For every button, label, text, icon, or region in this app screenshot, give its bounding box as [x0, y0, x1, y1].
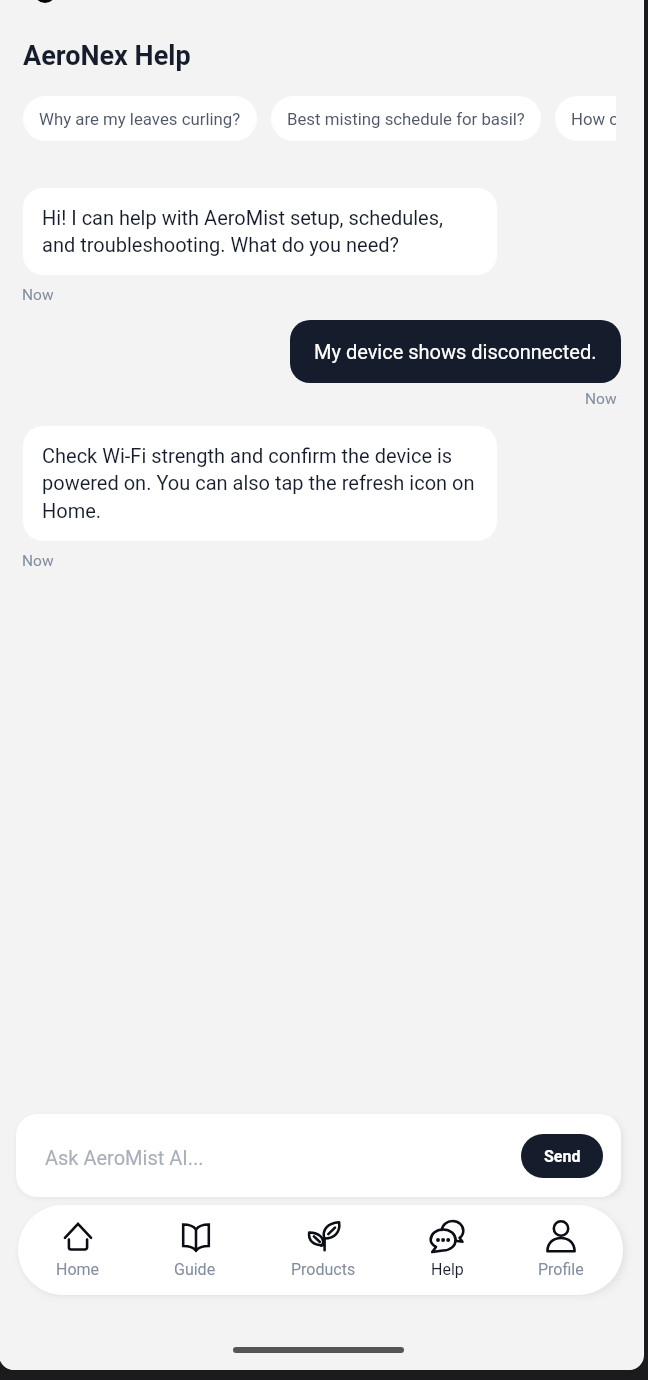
other: Guide [179, 1219, 213, 1253]
button[interactable]: My device shows disconnected. [290, 320, 621, 383]
button[interactable]: Send [521, 1134, 603, 1178]
other: Products [307, 1219, 341, 1253]
staticText: Now [585, 390, 617, 408]
staticText: Hi! I can help with AeroMist setup, sche… [42, 206, 478, 257]
staticText: Help [431, 1260, 464, 1279]
button[interactable]: Products [291, 1205, 356, 1295]
staticText: Why are my leaves curling? [39, 109, 241, 129]
other: Help [430, 1219, 464, 1253]
button[interactable]: Help [430, 1205, 464, 1295]
button[interactable]: Home [56, 1205, 100, 1295]
other: Profile [544, 1219, 578, 1253]
staticText: My device shows disconnected. [314, 340, 597, 363]
button[interactable]: Why are my leaves curling? [23, 96, 257, 141]
staticText: Guide [174, 1260, 216, 1279]
staticText: Best misting schedule for basil? [287, 109, 525, 129]
button[interactable]: How often should I clean it? [555, 96, 616, 141]
staticText: Now [22, 552, 54, 570]
staticText: Ask AeroMist AI... [45, 1146, 204, 1169]
staticText: Send [544, 1147, 581, 1166]
button[interactable]: Guide [174, 1205, 216, 1295]
button[interactable]: Hi! I can help with AeroMist setup, sche… [23, 188, 497, 275]
button[interactable]: Check Wi-Fi strength and confirm the dev… [23, 426, 497, 541]
staticText: Check Wi-Fi strength and confirm the dev… [42, 444, 478, 523]
staticText: How often should I clean it? [571, 109, 616, 129]
staticText: AeroNex Help [23, 40, 191, 72]
button[interactable]: Profile [538, 1205, 584, 1295]
staticText: Now [22, 286, 54, 304]
staticText: Home [56, 1260, 100, 1279]
staticText: Profile [538, 1260, 584, 1279]
other: Home [61, 1219, 95, 1253]
button[interactable]: Best misting schedule for basil? [271, 96, 541, 141]
staticText: Products [291, 1260, 356, 1279]
